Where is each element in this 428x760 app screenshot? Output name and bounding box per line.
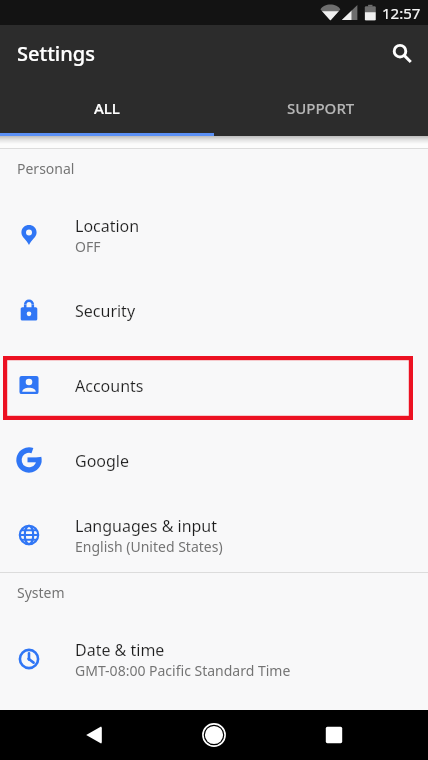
button[interactable]: Search — [378, 32, 422, 76]
button[interactable]: SUPPORT — [214, 82, 428, 136]
staticText: OFF — [75, 237, 101, 256]
staticText: Security — [75, 300, 136, 322]
staticText: Location — [75, 215, 140, 237]
staticText: Languages & input — [75, 515, 218, 537]
button[interactable]: Google — [0, 422, 428, 497]
staticText: Settings — [17, 40, 95, 67]
staticText: English (United States) — [75, 537, 223, 556]
button[interactable]: ALL — [0, 82, 214, 136]
staticText: Accounts — [75, 375, 144, 397]
button[interactable]: Accounts — [0, 347, 428, 422]
button[interactable]: Date & time — [0, 621, 428, 696]
staticText: 12:57 — [382, 3, 421, 23]
staticText: System — [17, 583, 65, 602]
button[interactable]: Languages & input — [0, 497, 428, 572]
button[interactable]: Recent apps — [294, 710, 374, 760]
staticText: Google — [75, 450, 130, 472]
staticText: Date & time — [75, 639, 165, 661]
staticText: Personal — [17, 159, 75, 178]
button[interactable]: Security — [0, 272, 428, 347]
staticText: GMT-08:00 Pacific Standard Time — [75, 661, 291, 680]
button[interactable]: Location — [0, 197, 428, 272]
button[interactable]: Home — [174, 710, 254, 760]
staticText: SUPPORT — [287, 98, 355, 118]
staticText: ALL — [94, 98, 120, 118]
button[interactable]: Back — [54, 710, 134, 760]
